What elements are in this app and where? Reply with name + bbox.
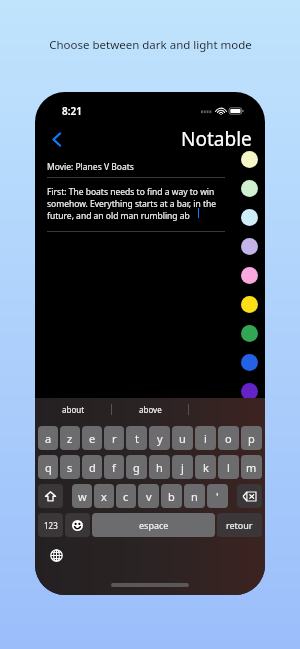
button[interactable]: d: [82, 455, 102, 479]
button[interactable]: ': [207, 484, 228, 508]
staticText: c: [123, 489, 129, 504]
staticText: e: [89, 431, 96, 446]
button[interactable]: Shift: [38, 484, 63, 508]
button[interactable]: retour: [217, 513, 262, 537]
button[interactable]: Colour 7: [241, 325, 258, 342]
button[interactable]: Colour 2: [241, 180, 258, 197]
staticText: f: [112, 460, 116, 475]
staticText: above: [139, 404, 162, 415]
staticText: i: [204, 431, 207, 446]
staticText: ': [216, 489, 219, 504]
button[interactable]: Colour 3: [241, 209, 258, 226]
staticText: y: [157, 431, 163, 446]
staticText: v: [146, 489, 152, 504]
button[interactable]: o: [218, 426, 239, 450]
button[interactable]: w: [72, 484, 92, 508]
button[interactable]: about: [35, 398, 111, 421]
staticText: p: [248, 431, 255, 446]
staticText: h: [156, 460, 163, 475]
button[interactable]: above: [112, 398, 188, 421]
button[interactable]: s: [60, 455, 80, 479]
staticText: Choose between dark and light mode: [49, 37, 252, 53]
button[interactable]: v: [138, 484, 159, 508]
button[interactable]: r: [104, 426, 124, 450]
button[interactable]: a: [38, 426, 58, 450]
button[interactable]: p: [241, 426, 262, 450]
button[interactable]: j: [172, 455, 193, 479]
button[interactable]: Colour 9: [241, 383, 258, 400]
staticText: j: [181, 460, 184, 475]
button[interactable]: Colour 6: [241, 296, 258, 313]
staticText: t: [135, 431, 139, 446]
button[interactable]: m: [241, 455, 262, 479]
button[interactable]: Emoji: [65, 513, 90, 537]
button[interactable]: t: [126, 426, 147, 450]
staticText: about: [62, 404, 85, 415]
staticText: u: [179, 431, 186, 446]
staticText: z: [67, 431, 73, 446]
button[interactable]: [189, 398, 265, 421]
staticText: x: [101, 489, 107, 504]
button[interactable]: Change keyboard language: [45, 544, 67, 566]
staticText: r: [112, 431, 117, 446]
staticText: k: [203, 460, 209, 475]
button[interactable]: Colour 4: [241, 238, 258, 255]
button[interactable]: espace: [92, 513, 215, 537]
button[interactable]: l: [218, 455, 239, 479]
staticText: m: [246, 460, 257, 475]
staticText: o: [225, 431, 232, 446]
button[interactable]: e: [82, 426, 102, 450]
button[interactable]: Colour 1: [241, 151, 258, 168]
staticText: b: [168, 489, 175, 504]
button[interactable]: Movie: Planes V Boats: [35, 157, 265, 177]
button[interactable]: n: [184, 484, 205, 508]
button[interactable]: x: [94, 484, 114, 508]
staticText: q: [45, 460, 52, 475]
button[interactable]: k: [195, 455, 216, 479]
button[interactable]: 123: [38, 513, 63, 537]
button[interactable]: Backspace: [237, 484, 262, 508]
button[interactable]: i: [195, 426, 216, 450]
staticText: espace: [139, 519, 169, 531]
button[interactable]: q: [38, 455, 58, 479]
staticText: l: [227, 460, 230, 475]
button[interactable]: g: [126, 455, 147, 479]
button[interactable]: f: [104, 455, 124, 479]
staticText: a: [45, 431, 52, 446]
button[interactable]: Back: [42, 124, 72, 154]
button[interactable]: u: [172, 426, 193, 450]
staticText: First: The boats needs to find a way to …: [47, 186, 233, 222]
staticText: d: [89, 460, 96, 475]
staticText: Movie: Planes V Boats: [47, 161, 134, 173]
button[interactable]: c: [116, 484, 136, 508]
staticText: n: [191, 489, 198, 504]
button[interactable]: Colour 8: [241, 354, 258, 371]
staticText: retour: [226, 519, 253, 531]
button[interactable]: First: The boats needs to find a way to …: [47, 186, 233, 222]
staticText: s: [67, 460, 73, 475]
button[interactable]: h: [149, 455, 170, 479]
staticText: 123: [44, 520, 58, 531]
button[interactable]: y: [149, 426, 170, 450]
staticText: w: [78, 489, 87, 504]
staticText: Notable: [181, 126, 252, 152]
button[interactable]: z: [60, 426, 80, 450]
button[interactable]: b: [161, 484, 182, 508]
button[interactable]: Colour 5: [241, 267, 258, 284]
staticText: 8:21: [62, 104, 82, 118]
staticText: g: [133, 460, 140, 475]
